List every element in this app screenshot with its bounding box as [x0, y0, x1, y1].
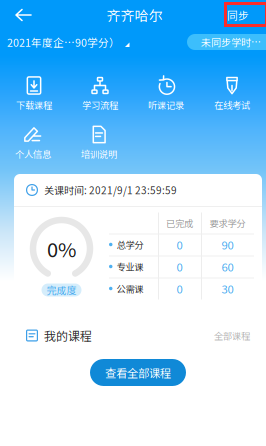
button[interactable]: 听课记录 [133, 74, 199, 123]
staticText: 0% [47, 234, 76, 263]
staticText: 0 [176, 236, 182, 253]
button[interactable]: 学习流程 [67, 74, 133, 123]
button[interactable]: 同步 [214, 2, 262, 28]
staticText: 同步 [227, 7, 249, 23]
staticText: 60 [221, 258, 233, 275]
button[interactable]: 培训说明 [66, 123, 132, 172]
staticText: 听课记录 [148, 98, 184, 111]
staticText: 未同步学时… [201, 35, 261, 49]
button[interactable]: 个人信息 [0, 123, 66, 172]
staticText: 个人信息 [15, 147, 51, 160]
button[interactable]: 下载课程 [1, 74, 67, 123]
staticText: 已完成 [166, 216, 193, 230]
staticText: 0 [176, 280, 182, 297]
staticText: 专业课 [116, 260, 143, 273]
staticText: 全部课程 [214, 329, 250, 342]
button[interactable]: 返回 [0, 2, 55, 28]
staticText: 齐齐哈尔 [106, 5, 162, 25]
staticText: 0 [176, 258, 182, 275]
staticText: 要求学分 [209, 216, 245, 230]
staticText: 30 [221, 280, 233, 297]
button[interactable]: 查看全部课程 [90, 359, 186, 386]
staticText: 在线考试 [214, 98, 250, 111]
staticText: 培训说明 [81, 147, 117, 160]
staticText: 学习流程 [82, 98, 118, 111]
staticText: 完成度 [46, 283, 76, 297]
button[interactable]: 在线考试 [199, 74, 265, 123]
staticText: 关课时间: 2021/9/1 23:59:59 [44, 183, 177, 197]
staticText: 总学分 [116, 238, 143, 251]
staticText: 查看全部课程 [105, 364, 171, 381]
staticText: 90 [221, 236, 233, 253]
button[interactable]: 全部课程 [214, 329, 250, 342]
staticText: 下载课程 [16, 98, 52, 111]
button[interactable]: 2021年度企…90学分） [0, 32, 130, 52]
staticText: 公需课 [116, 282, 143, 295]
staticText: 我的课程 [44, 327, 92, 344]
button[interactable]: 未同步学时… [187, 34, 266, 50]
staticText: 2021年度企…90学分） [7, 34, 120, 50]
